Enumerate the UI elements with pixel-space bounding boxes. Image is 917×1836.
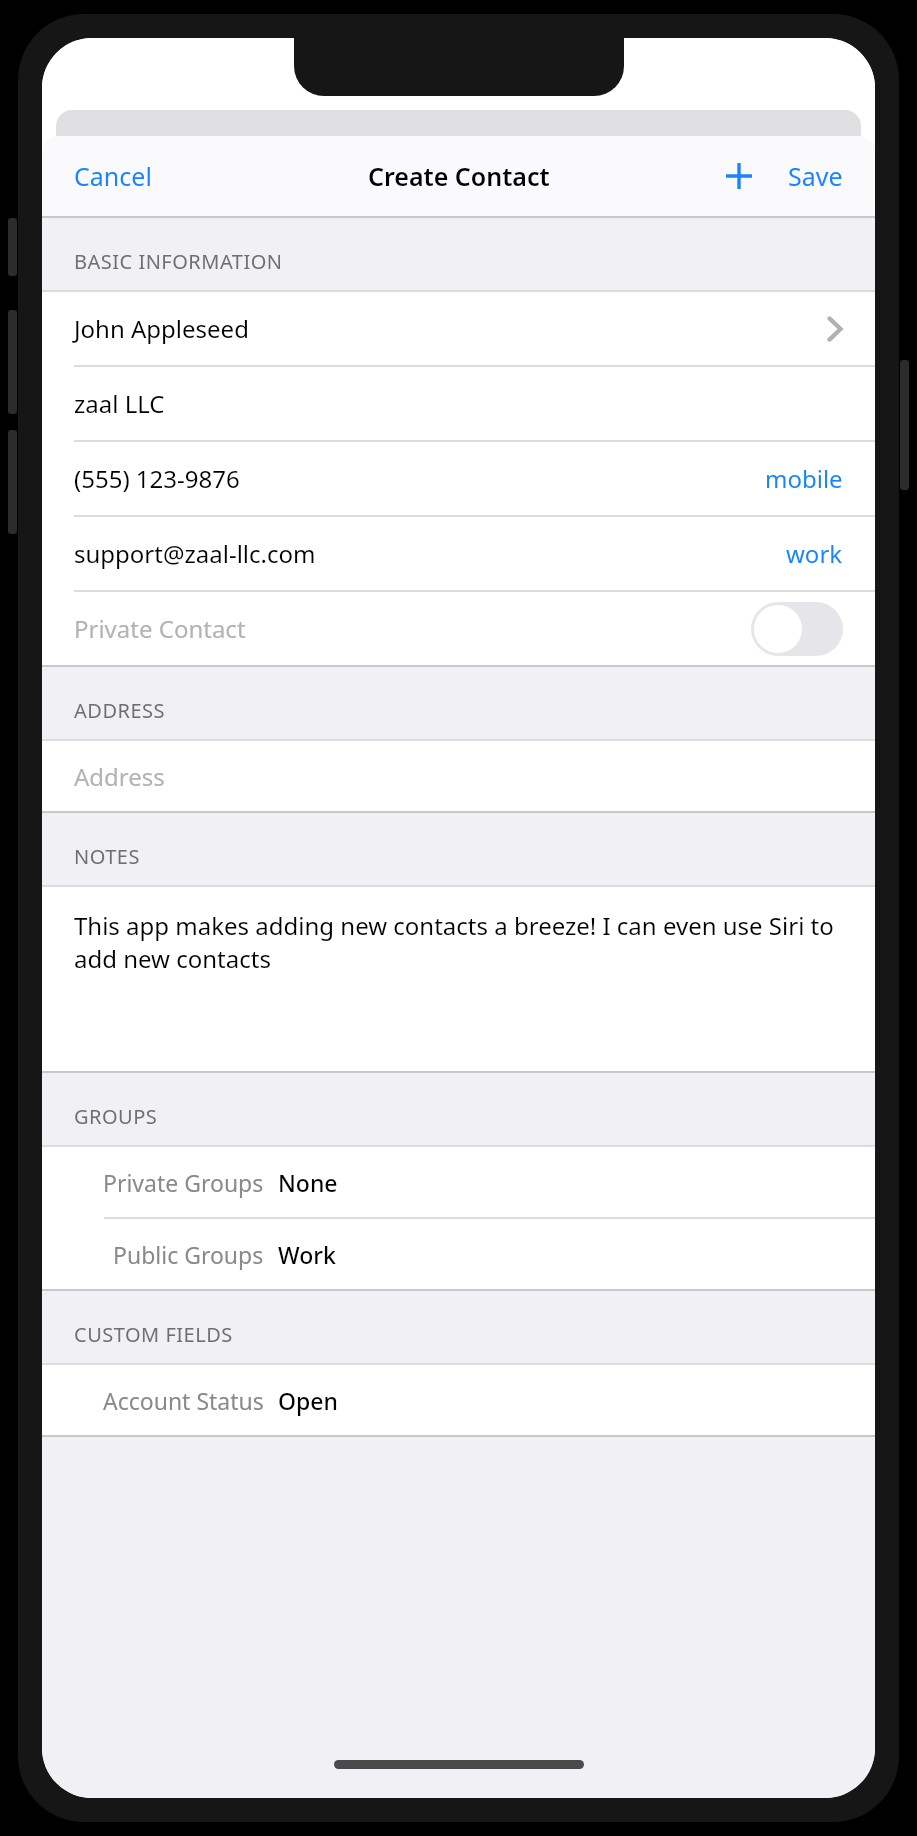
button[interactable]: Private Contact	[42, 592, 875, 665]
staticText: zaal LLC	[74, 387, 165, 420]
button[interactable]: (555) 123-9876	[42, 442, 875, 515]
button[interactable]: Private Groups	[42, 1147, 875, 1217]
button[interactable]: Private Contact toggle	[751, 602, 843, 656]
staticText: Public Groups	[113, 1239, 264, 1270]
staticText: Account Status	[103, 1385, 264, 1416]
button[interactable]: Cancel	[68, 151, 158, 201]
staticText: support@zaal-llc.com	[74, 537, 316, 570]
staticText: Create Contact	[368, 159, 550, 193]
staticText: John Appleseed	[74, 312, 249, 345]
staticText: Save	[788, 159, 843, 193]
staticText: None	[278, 1167, 338, 1198]
staticText: Open	[278, 1385, 338, 1416]
staticText: Private Groups	[103, 1167, 264, 1198]
button[interactable]: Account Status	[42, 1365, 875, 1435]
staticText: NOTES	[74, 843, 140, 870]
button[interactable]: zaal LLC	[42, 367, 875, 440]
staticText: ADDRESS	[74, 697, 165, 724]
staticText: BASIC INFORMATION	[74, 248, 283, 275]
button[interactable]: John Appleseed	[42, 292, 875, 365]
button[interactable]: Add field	[714, 151, 764, 201]
button[interactable]: Save	[782, 151, 849, 201]
staticText: mobile	[765, 462, 843, 495]
button[interactable]: Address	[42, 741, 875, 811]
staticText: This app makes adding new contacts a bre…	[74, 909, 843, 975]
staticText: Private Contact	[74, 612, 246, 645]
staticText: Address	[74, 760, 165, 793]
staticText: Work	[278, 1239, 336, 1270]
staticText: GROUPS	[74, 1103, 158, 1130]
staticText: Cancel	[74, 159, 152, 193]
staticText: CUSTOM FIELDS	[74, 1321, 233, 1348]
staticText: work	[786, 537, 843, 570]
button[interactable]: support@zaal-llc.com	[42, 517, 875, 590]
button[interactable]: This app makes adding new contacts a bre…	[42, 887, 875, 1071]
staticText: (555) 123-9876	[74, 462, 240, 495]
button[interactable]: Public Groups	[42, 1219, 875, 1289]
